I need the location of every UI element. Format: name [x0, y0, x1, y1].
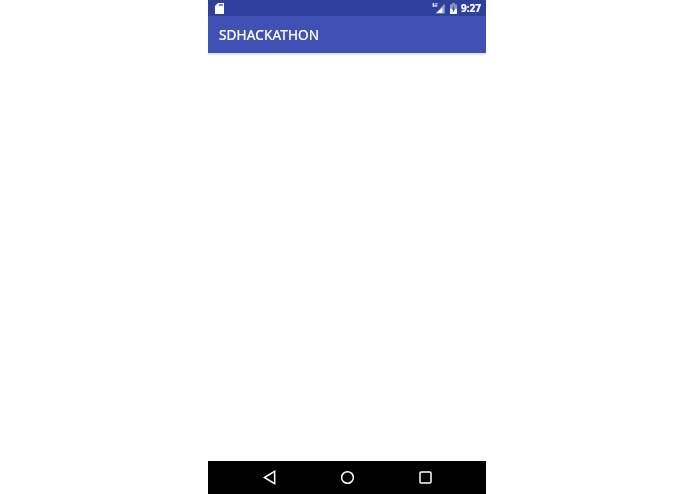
other: LTE signal strength — [432, 2, 445, 14]
other: SD card notification — [215, 3, 224, 14]
staticText: SDHACKATHON — [219, 26, 320, 44]
other: Battery charging — [450, 3, 457, 14]
button[interactable]: Recent apps — [405, 461, 445, 494]
button[interactable]: SDHACKATHON — [208, 16, 486, 53]
staticText: 9:27 — [461, 1, 481, 15]
button[interactable]: Back — [249, 461, 289, 494]
button[interactable]: Home — [327, 461, 367, 494]
